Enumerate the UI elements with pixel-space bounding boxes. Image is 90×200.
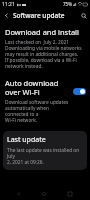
staticText: Download and install	[5, 27, 79, 37]
staticText: Software update	[13, 11, 65, 20]
staticText: Last checked on July 2, 2021 Downloading…	[5, 39, 82, 69]
button[interactable]: Download and install	[0, 25, 90, 71]
staticText: Download software updates automatically …	[5, 99, 71, 123]
button[interactable]: Back	[0, 9, 13, 22]
button[interactable]: Recent apps	[64, 188, 76, 200]
button[interactable]: Back	[13, 188, 25, 200]
staticText: Last update	[7, 135, 46, 145]
staticText: Auto download over Wi-Fi	[5, 78, 71, 97]
button[interactable]: Auto download over Wi-Fi toggle	[73, 88, 86, 95]
button[interactable]: Auto download over Wi-Fi	[0, 76, 90, 125]
staticText: 11:21	[2, 1, 15, 8]
button[interactable]: Last update	[3, 131, 87, 170]
staticText: 75%	[63, 1, 72, 7]
button[interactable]: Home	[38, 188, 50, 200]
staticText: The last update was installed on July 2,…	[7, 147, 83, 165]
button[interactable]: Search	[77, 9, 90, 22]
